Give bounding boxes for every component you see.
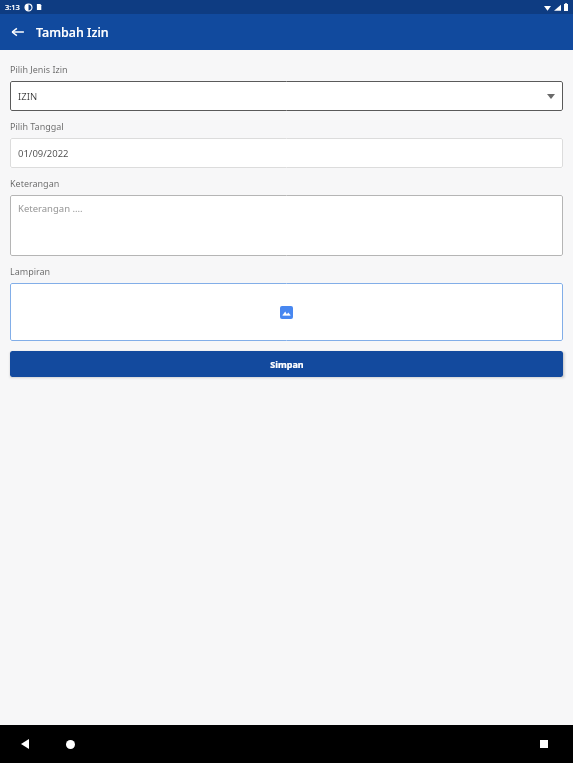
staticText: Keterangan .... [18,202,83,215]
button[interactable]: Simpan [10,351,563,377]
staticText: Keterangan [10,177,60,189]
button[interactable]: Home [57,731,83,757]
button[interactable]: Back [4,18,32,46]
button[interactable]: Recent apps [531,731,557,757]
staticText: Tambah Izin [36,24,109,41]
button[interactable]: Attach image [10,283,563,341]
button[interactable]: IZIN [10,81,563,111]
button[interactable]: Back [12,731,38,757]
staticText: Pilih Tanggal [10,120,64,132]
staticText: 3:13 [5,2,20,12]
button[interactable]: 01/09/2022 [10,138,563,168]
button[interactable]: Keterangan .... [10,195,563,256]
staticText: IZIN [18,90,547,103]
staticText: Lampiran [10,265,51,277]
staticText: Simpan [270,358,304,370]
staticText: Pilih Jenis Izin [10,63,68,75]
staticText: 01/09/2022 [18,147,69,160]
